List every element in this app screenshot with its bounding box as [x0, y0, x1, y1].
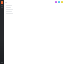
button[interactable]: Category	[58, 1, 60, 3]
button[interactable]: Category	[55, 1, 57, 3]
button[interactable]: App home	[1, 1, 3, 4]
button[interactable]	[5, 6, 64, 8]
button[interactable]	[5, 10, 64, 12]
button[interactable]	[5, 8, 64, 10]
button[interactable]: Category	[61, 1, 63, 3]
button[interactable]	[5, 12, 64, 14]
button[interactable]	[5, 4, 64, 6]
